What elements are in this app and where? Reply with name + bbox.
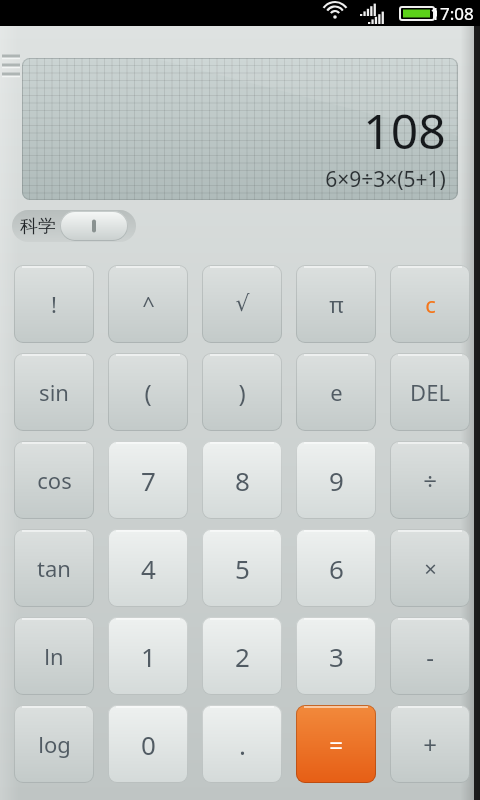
staticText: e [330, 377, 343, 407]
staticText: 3 [329, 639, 344, 674]
button[interactable]: Scientific mode toggle [12, 210, 136, 242]
staticText: 108 [363, 98, 446, 163]
staticText: tan [37, 553, 71, 583]
button[interactable]: 8 [202, 441, 282, 519]
staticText: DEL [410, 377, 450, 407]
button[interactable]: DEL [390, 353, 470, 431]
button[interactable]: 3 [296, 617, 376, 695]
button[interactable]: ln [14, 617, 94, 695]
staticText: 8 [235, 463, 250, 498]
button[interactable]: = [296, 705, 376, 783]
staticText: 4 [141, 551, 156, 586]
button[interactable]: π [296, 265, 376, 343]
button[interactable]: cos [14, 441, 94, 519]
button[interactable]: 9 [296, 441, 376, 519]
staticText: ) [238, 376, 246, 409]
button[interactable]: 0 [108, 705, 188, 783]
button[interactable]: √ [202, 265, 282, 343]
button[interactable]: ^ [108, 265, 188, 343]
button[interactable]: × [390, 529, 470, 607]
button[interactable]: ( [108, 353, 188, 431]
button[interactable]: 6 [296, 529, 376, 607]
button[interactable]: tan [14, 529, 94, 607]
staticText: . [239, 727, 246, 762]
button[interactable]: 7 [108, 441, 188, 519]
button[interactable]: ) [202, 353, 282, 431]
staticText: 6×9÷3×(5+1) [325, 165, 446, 194]
button[interactable]: ÷ [390, 441, 470, 519]
button[interactable]: 1 [108, 617, 188, 695]
staticText: 科学 [20, 215, 56, 238]
staticText: log [38, 729, 71, 759]
staticText: 9 [329, 463, 344, 498]
staticText: ln [44, 641, 64, 671]
button[interactable]: - [390, 617, 470, 695]
button[interactable]: 5 [202, 529, 282, 607]
staticText: × [424, 553, 437, 583]
staticText: 5 [235, 551, 250, 586]
staticText: 2 [235, 639, 250, 674]
staticText: ^ [142, 289, 155, 319]
staticText: 17:08 [430, 2, 474, 25]
button[interactable]: log [14, 705, 94, 783]
staticText: sin [39, 377, 69, 407]
staticText: √ [235, 291, 250, 317]
staticText: - [426, 640, 434, 673]
staticText: ( [144, 376, 152, 409]
staticText: + [423, 728, 437, 761]
button[interactable]: sin [14, 353, 94, 431]
button[interactable]: + [390, 705, 470, 783]
staticText: c [425, 289, 436, 319]
staticText: ÷ [423, 464, 437, 497]
button[interactable]: e [296, 353, 376, 431]
button[interactable]: 2 [202, 617, 282, 695]
staticText: cos [37, 465, 72, 495]
staticText: = [329, 728, 343, 761]
button[interactable]: . [202, 705, 282, 783]
button[interactable]: c [390, 265, 470, 343]
button[interactable]: ! [14, 265, 94, 343]
staticText: 0 [141, 727, 156, 762]
staticText: 6 [329, 551, 344, 586]
staticText: π [329, 289, 344, 319]
staticText: 1 [141, 639, 156, 674]
staticText: 7 [141, 463, 156, 498]
button[interactable]: 4 [108, 529, 188, 607]
staticText: ! [51, 289, 57, 319]
